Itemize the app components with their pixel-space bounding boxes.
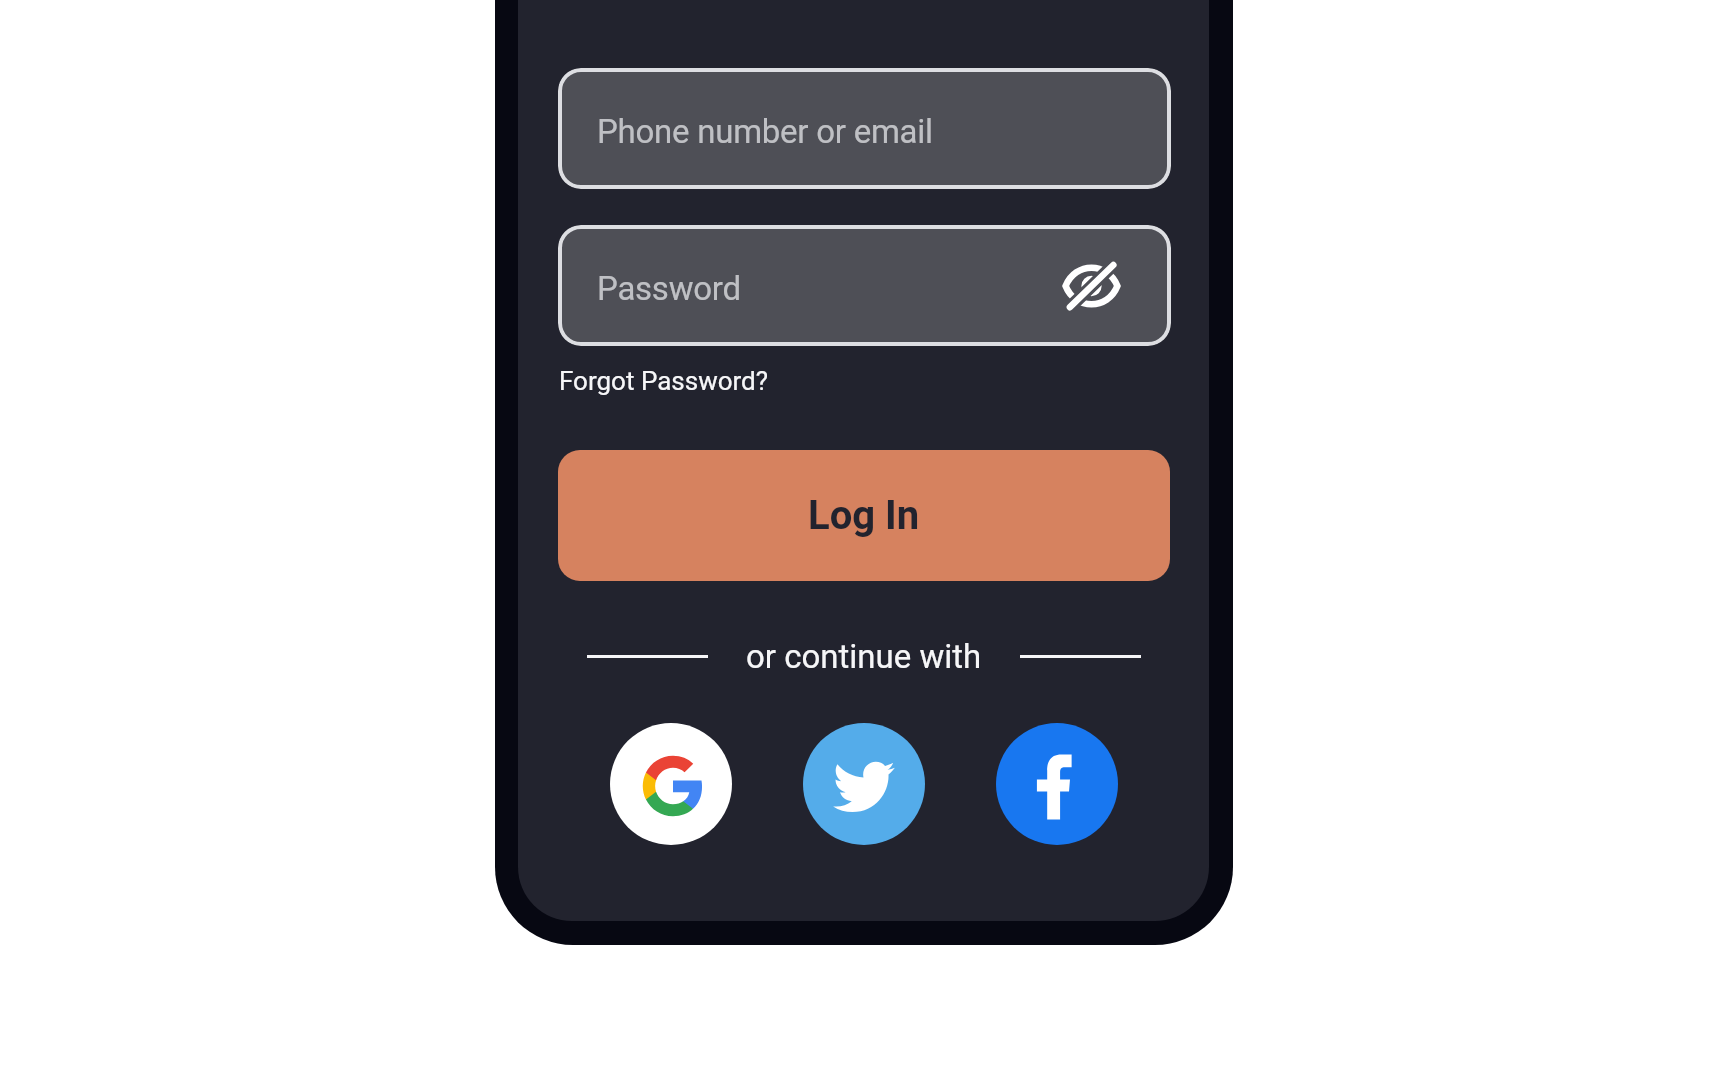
staticText: Password <box>597 269 741 308</box>
button[interactable]: Show password <box>1057 251 1126 320</box>
button[interactable]: Continue with Facebook <box>996 723 1118 845</box>
button[interactable]: Phone number or email <box>558 68 1171 189</box>
staticText: or continue with <box>746 637 982 676</box>
button[interactable]: Continue with Twitter <box>803 723 925 845</box>
staticText: Log In <box>808 492 920 539</box>
button[interactable]: Continue with Google <box>610 723 732 845</box>
button[interactable]: Password <box>558 225 1171 346</box>
staticText: Phone number or email <box>597 112 933 151</box>
button[interactable]: Forgot Password? <box>559 366 769 396</box>
button[interactable]: Log In <box>558 450 1170 581</box>
